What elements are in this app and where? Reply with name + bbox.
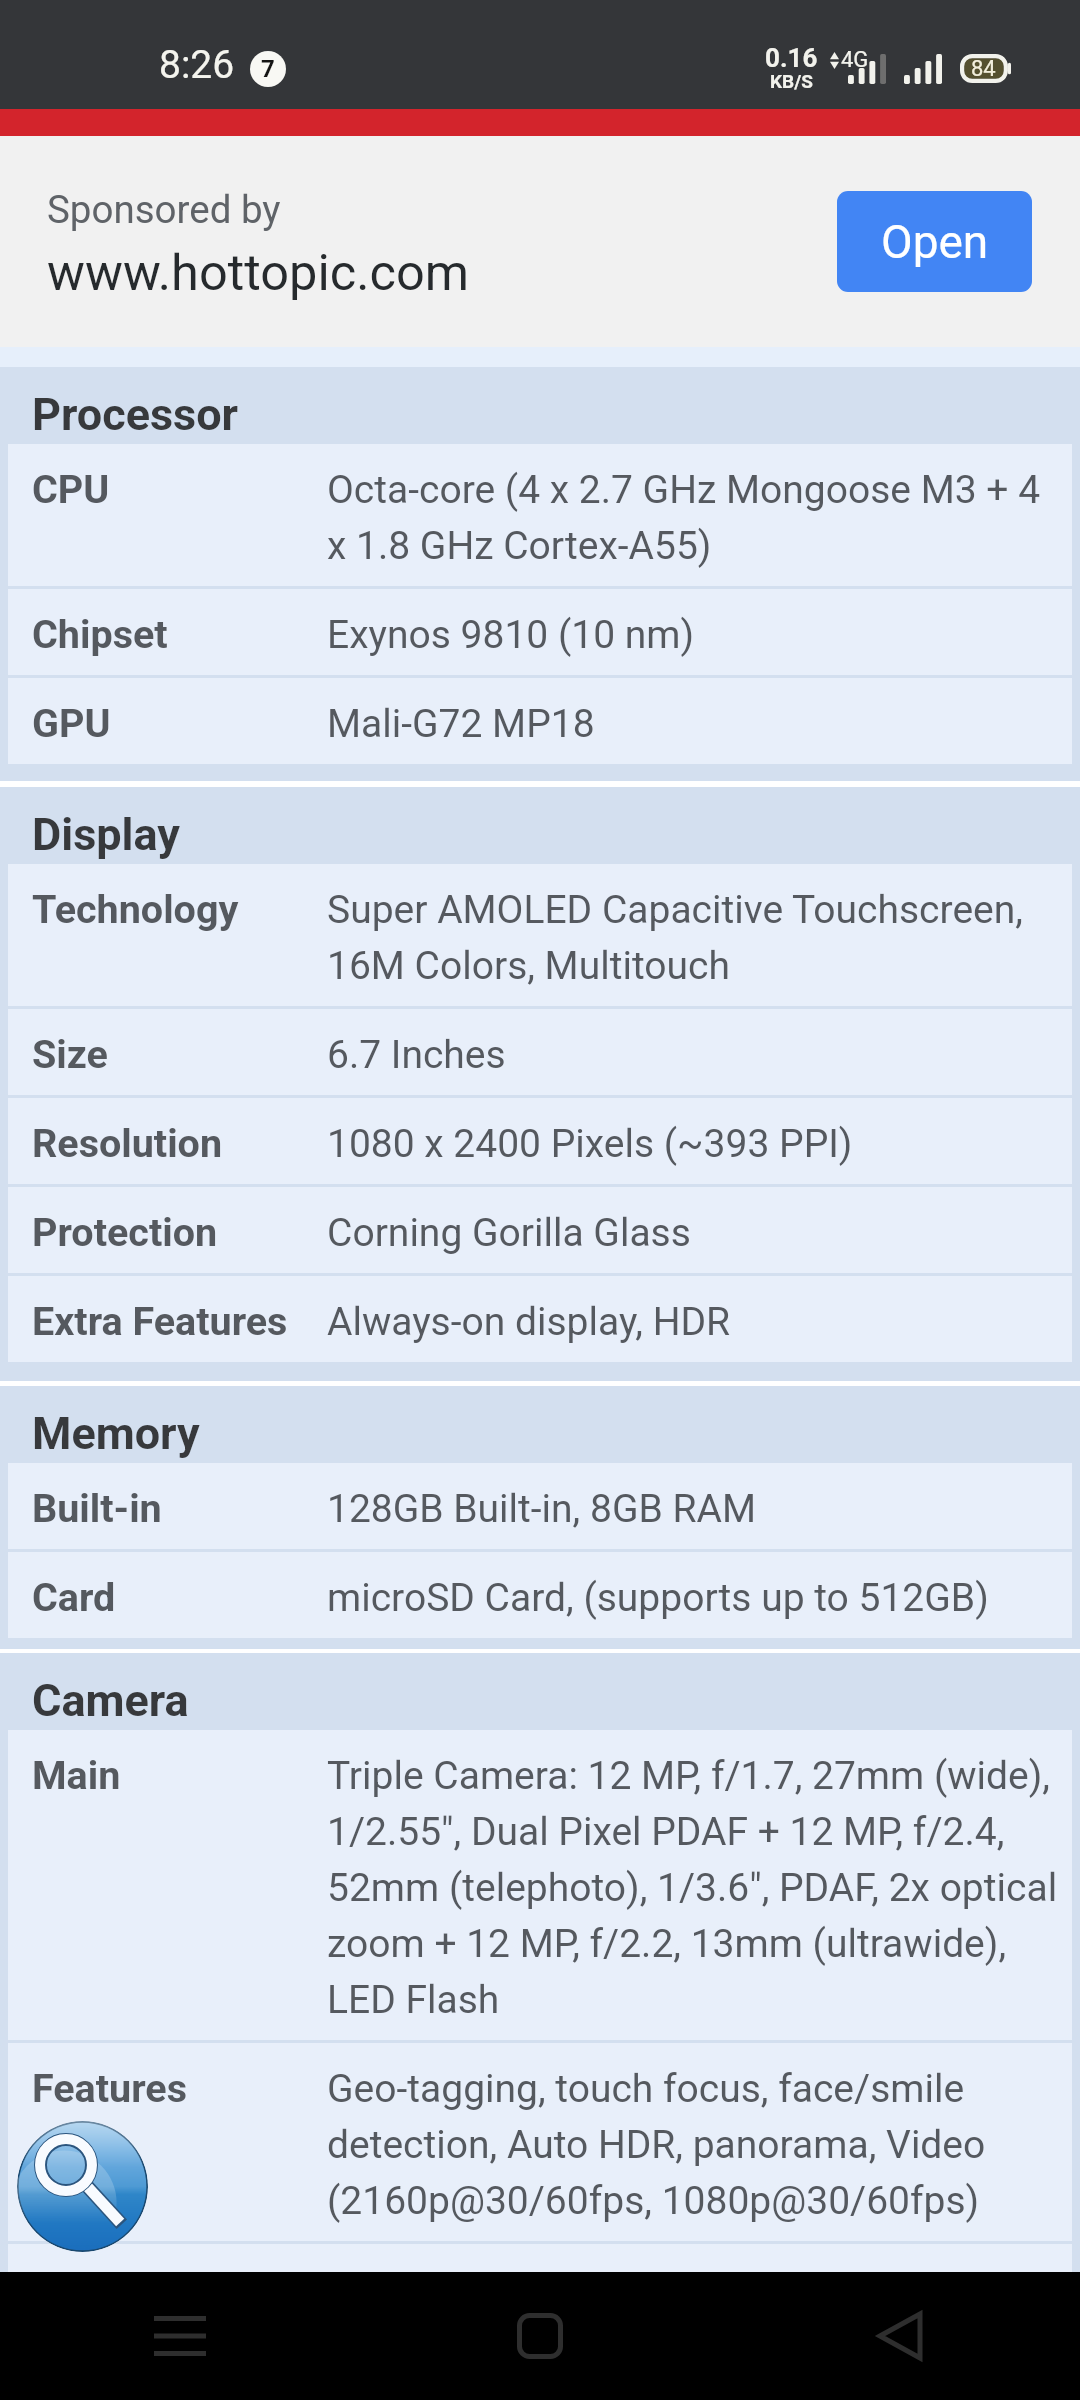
staticText: 8:26 <box>159 42 235 88</box>
staticText: Open <box>881 215 989 269</box>
staticText: Display <box>32 808 180 861</box>
staticText: Mali-G72 MP18 <box>327 693 595 749</box>
staticText: Processor <box>32 388 239 441</box>
button[interactable]: Home <box>475 2272 605 2400</box>
staticText: www.hottopic.com <box>47 242 469 302</box>
staticText: Size <box>32 1024 327 1080</box>
staticText: Memory <box>32 1407 200 1460</box>
staticText: Card <box>32 1567 327 1623</box>
staticText: Features <box>32 2058 327 2114</box>
staticText: Technology <box>32 879 327 935</box>
staticText: Geo-tagging, touch focus, face/smile det… <box>327 2058 1058 2226</box>
button[interactable]: Chipset <box>8 589 1072 675</box>
staticText: Camera <box>32 1674 189 1727</box>
button[interactable]: GPU <box>8 678 1072 764</box>
button[interactable]: Protection <box>8 1187 1072 1273</box>
button[interactable]: Extra Features <box>8 1276 1072 1362</box>
staticText: Always-on display, HDR <box>327 1291 731 1347</box>
button[interactable]: Recent apps <box>115 2272 245 2400</box>
staticText: Protection <box>32 1202 327 1258</box>
staticText: 0.16 <box>765 45 818 73</box>
staticText: KB/S <box>770 71 813 92</box>
button[interactable]: Open <box>837 191 1032 292</box>
staticText: Sponsored by <box>47 182 281 234</box>
button[interactable]: Back <box>835 2272 965 2400</box>
button[interactable]: Video <box>8 2244 1072 2330</box>
staticText: Chipset <box>32 604 327 660</box>
staticText: 6.7 Inches <box>327 1024 506 1080</box>
staticText: CPU <box>32 459 327 515</box>
button[interactable]: Built-in <box>8 1463 1072 1549</box>
staticText: 7 <box>261 55 275 83</box>
staticText: Triple Camera: 12 MP, f/1.7, 27mm (wide)… <box>327 1745 1058 2025</box>
button[interactable]: Search <box>17 2121 148 2252</box>
staticText: 4G <box>841 48 869 72</box>
staticText: 128GB Built-in, 8GB RAM <box>327 1478 756 1534</box>
staticText: 84 <box>971 56 996 82</box>
staticText: Main <box>32 1745 327 1801</box>
button[interactable]: CPU <box>8 444 1072 586</box>
staticText: 1080 x 2400 Pixels (~393 PPI) <box>327 1113 853 1169</box>
button[interactable]: Features <box>8 2043 1072 2241</box>
staticText: microSD Card, (supports up to 512GB) <box>327 1567 989 1623</box>
button[interactable]: Size <box>8 1009 1072 1095</box>
button[interactable]: Card <box>8 1552 1072 1638</box>
button[interactable]: Main <box>8 1730 1072 2040</box>
staticText: Exynos 9810 (10 nm) <box>327 604 695 660</box>
staticText: GPU <box>32 693 327 749</box>
staticText: Resolution <box>32 1113 327 1169</box>
button[interactable]: Resolution <box>8 1098 1072 1184</box>
staticText: Super AMOLED Capacitive Touchscreen, 16M… <box>327 879 1058 991</box>
button[interactable]: Technology <box>8 864 1072 1006</box>
staticText: Corning Gorilla Glass <box>327 1202 691 1258</box>
staticText: 2160p@30/60fps, 1080p@30/60fps <box>327 2259 953 2315</box>
staticText: Video <box>32 2259 327 2315</box>
staticText: Built-in <box>32 1478 327 1534</box>
staticText: Extra Features <box>32 1291 327 1347</box>
staticText: Octa-core (4 x 2.7 GHz Mongoose M3 + 4 x… <box>327 459 1058 571</box>
